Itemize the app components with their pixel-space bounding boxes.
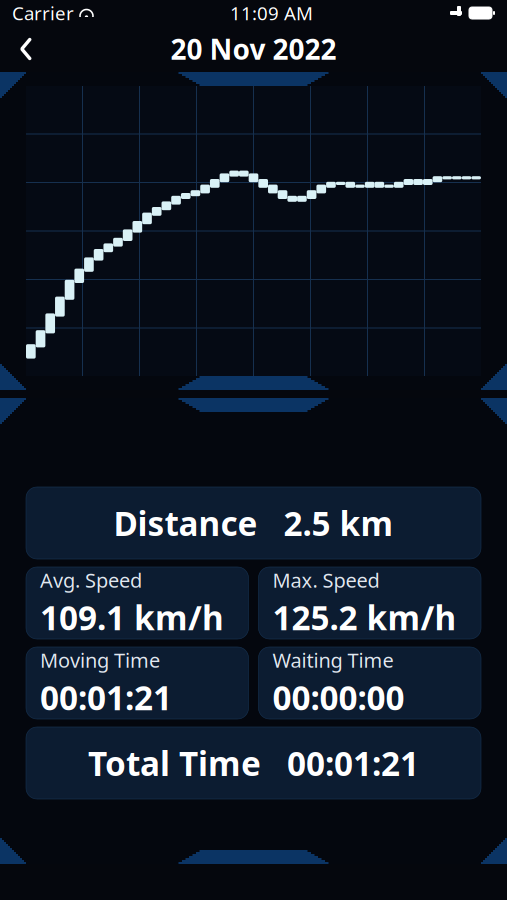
staticText: 00:00:00 [272,675,404,719]
staticText: 109.1 km/h [40,595,224,639]
staticText: Waiting Time [272,647,393,673]
button[interactable]: Moving Time [26,647,248,719]
button[interactable]: Waiting Time [258,647,481,719]
button[interactable]: Max. Speed [258,567,481,639]
staticText: Moving Time [40,647,160,673]
staticText: 20 Nov 2022 [170,30,336,68]
staticText: 00:01:21 [287,741,419,785]
button[interactable]: Avg. Speed [26,567,248,639]
staticText: Max. Speed [272,567,379,593]
staticText: 2.5 km [283,501,393,545]
staticText: Distance [113,501,257,545]
staticText: 00:01:21 [40,675,172,719]
staticText: 11:09 AM [230,1,313,25]
button[interactable]: Total Time [26,727,481,799]
button[interactable]: Distance [26,487,481,559]
staticText: Avg. Speed [40,567,142,593]
staticText: Total Time [88,741,261,785]
staticText: Carrier [12,1,74,25]
button[interactable]: Back [0,27,52,71]
staticText: 125.2 km/h [272,595,456,639]
